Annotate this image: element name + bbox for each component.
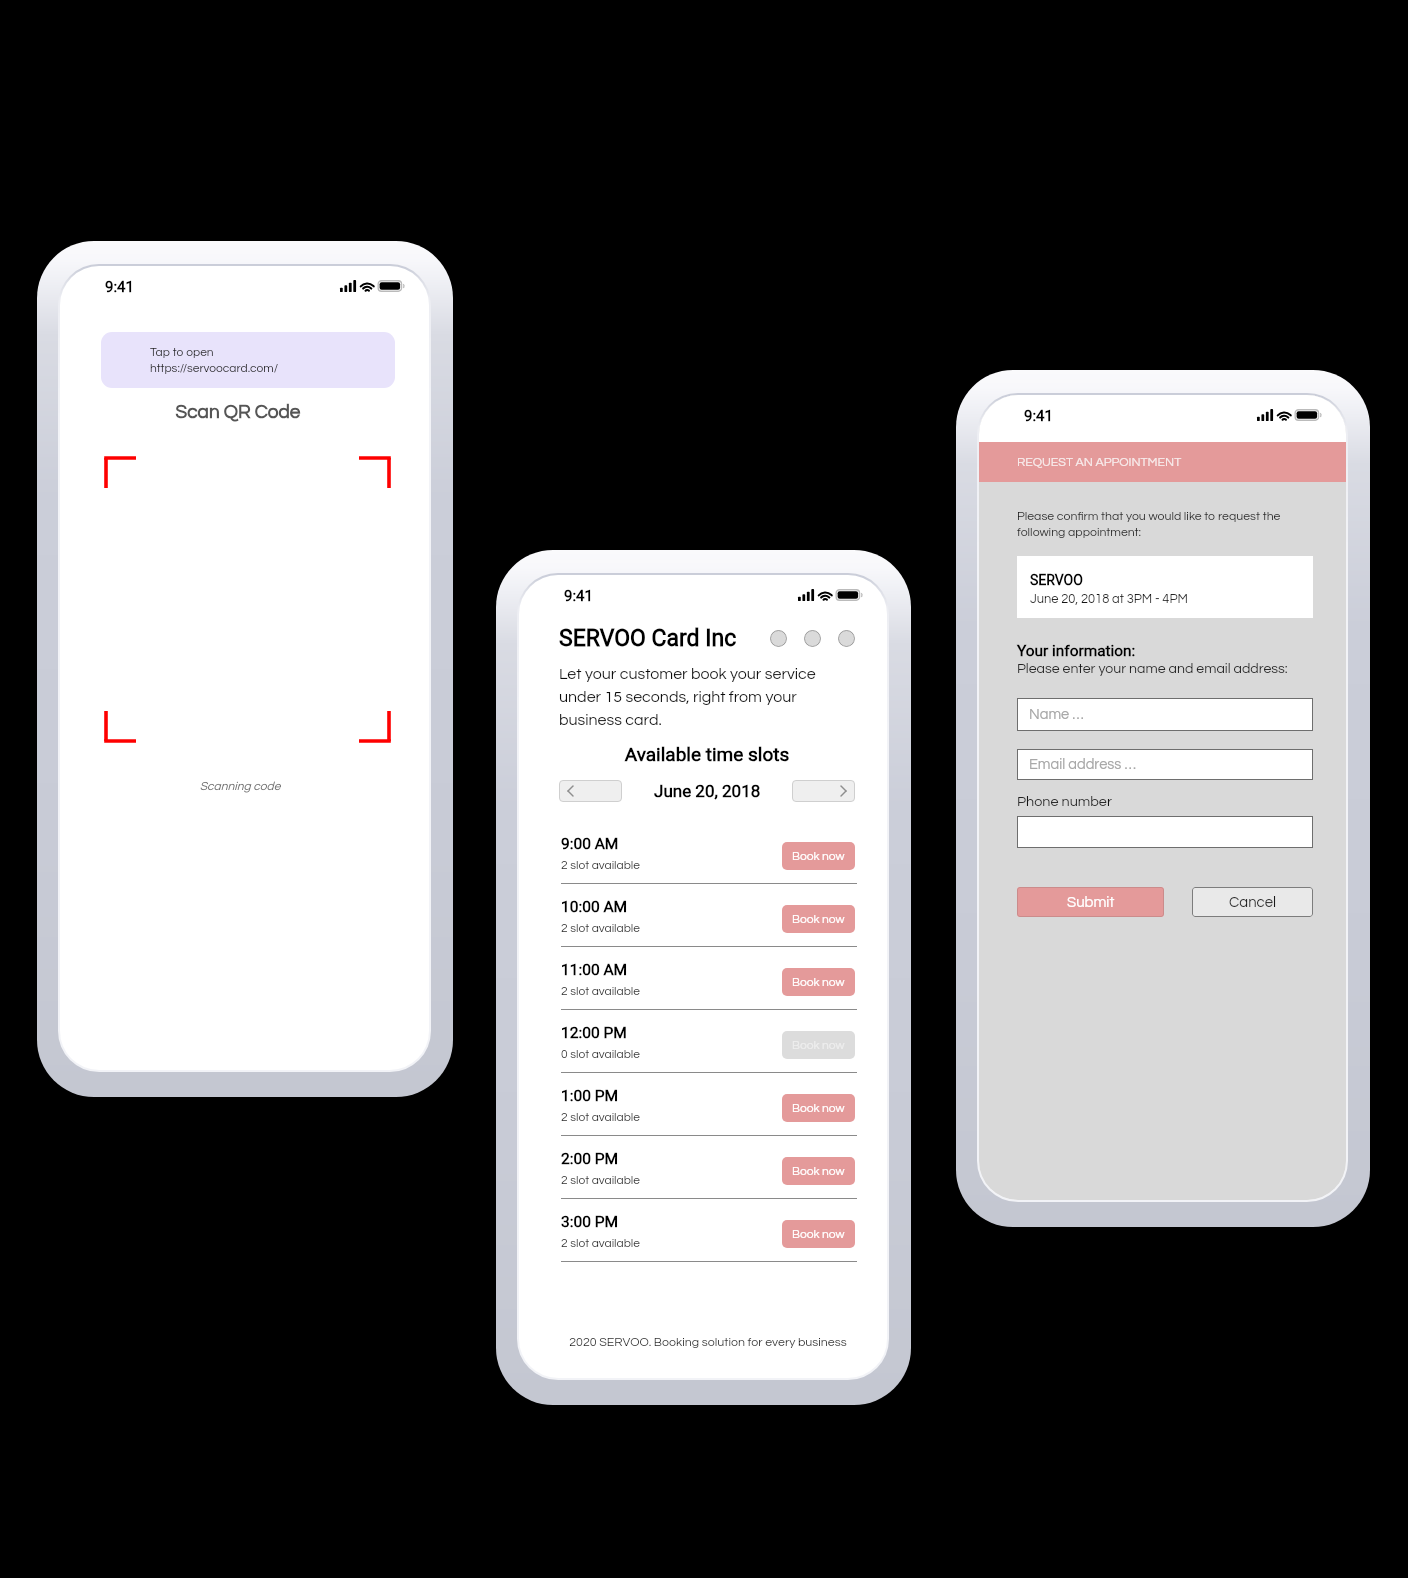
staticText: Book now: [792, 1228, 845, 1240]
button[interactable]: Option 3: [838, 630, 855, 647]
staticText: Tap to open: [150, 346, 214, 358]
staticText: Book now: [792, 1165, 845, 1177]
button[interactable]: Book now: [782, 905, 855, 933]
staticText: 2 slot available: [561, 1237, 641, 1249]
staticText: Available time slots: [559, 743, 855, 765]
staticText: Book now: [792, 1102, 845, 1114]
staticText: 2 slot available: [561, 922, 641, 934]
staticText: Please confirm that you would like to re…: [1017, 510, 1313, 538]
button[interactable]: Book now: [782, 1094, 855, 1122]
staticText: Let your customer book your service unde…: [559, 666, 855, 729]
staticText: Your information:: [1017, 642, 1136, 660]
button[interactable]: Previous day: [559, 780, 622, 802]
staticText: Book now: [792, 1039, 845, 1051]
button[interactable]: Name …: [1017, 698, 1313, 731]
staticText: 2 slot available: [561, 985, 641, 997]
button[interactable]: Option 1: [770, 630, 787, 647]
staticText: 2 slot available: [561, 1174, 641, 1186]
staticText: SERVOO Card Inc: [559, 625, 737, 652]
staticText: Book now: [792, 976, 845, 988]
staticText: Email address …: [1029, 757, 1137, 772]
staticText: Book now: [792, 913, 845, 925]
button[interactable]: Submit: [1017, 887, 1164, 917]
button[interactable]: Cancel: [1192, 887, 1313, 917]
staticText: Book now: [792, 850, 845, 862]
staticText: June 20, 2018 at 3PM - 4PM: [1030, 592, 1188, 605]
staticText: Cancel: [1229, 895, 1277, 910]
staticText: 9:41: [1024, 407, 1053, 425]
staticText: 2 slot available: [561, 1111, 641, 1123]
staticText: June 20, 2018: [654, 781, 761, 801]
staticText: 9:41: [564, 587, 593, 605]
button[interactable]: Next day: [792, 780, 855, 802]
staticText: 9:41: [105, 278, 134, 296]
button[interactable]: Email address …: [1017, 749, 1313, 780]
staticText: 12:00 PM: [561, 1024, 627, 1042]
staticText: SERVOO: [1030, 572, 1083, 588]
button[interactable]: Book now: [782, 1031, 855, 1059]
staticText: https://servoocard.com/: [150, 362, 279, 374]
button[interactable]: Phone number field: [1017, 816, 1313, 848]
staticText: 11:00 AM: [561, 961, 628, 979]
staticText: 1:00 PM: [561, 1087, 619, 1105]
button[interactable]: Book now: [782, 1157, 855, 1185]
staticText: REQUEST AN APPOINTMENT: [1017, 456, 1182, 469]
button[interactable]: Book now: [782, 968, 855, 996]
staticText: Name …: [1029, 707, 1084, 722]
staticText: 2:00 PM: [561, 1150, 619, 1168]
staticText: Please enter your name and email address…: [1017, 661, 1288, 676]
staticText: Submit: [1067, 895, 1115, 910]
button[interactable]: Option 2: [804, 630, 821, 647]
staticText: 10:00 AM: [561, 898, 628, 916]
button[interactable]: Book now: [782, 842, 855, 870]
staticText: Scanning code: [92, 780, 388, 792]
staticText: 0 slot available: [561, 1048, 641, 1060]
staticText: 2 slot available: [561, 859, 641, 871]
button[interactable]: Tap to open: [101, 332, 395, 388]
staticText: 2020 SERVOO. Booking solution for every …: [560, 1336, 856, 1349]
staticText: 3:00 PM: [561, 1213, 619, 1231]
staticText: Phone number: [1017, 794, 1112, 809]
staticText: 9:00 AM: [561, 835, 619, 853]
staticText: Scan QR Code: [90, 402, 386, 422]
button[interactable]: Book now: [782, 1220, 855, 1248]
